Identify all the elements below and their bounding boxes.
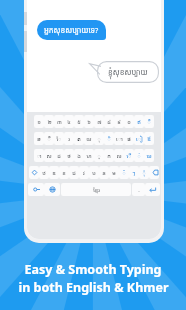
- button[interactable]: ៉: [119, 166, 129, 179]
- button[interactable]: ង: [74, 149, 84, 162]
- button[interactable]: ឹ: [144, 115, 154, 128]
- button[interactable]: ០: [124, 115, 134, 128]
- button[interactable]: ហ: [84, 149, 94, 162]
- staticText: ០: [127, 118, 131, 126]
- button[interactable]: ៦: [84, 115, 94, 128]
- button[interactable]: ថ: [64, 149, 74, 162]
- staticText: ឥ: [137, 118, 141, 126]
- staticText: ន: [102, 169, 106, 177]
- button[interactable]: ខ: [59, 166, 69, 179]
- button[interactable]: ោ: [114, 132, 124, 145]
- staticText: in both English & Khmer: [18, 279, 169, 296]
- button[interactable]: ម: [109, 166, 119, 179]
- staticText: Easy & Smooth Typing: [24, 261, 162, 278]
- button[interactable]: Space: [61, 183, 131, 196]
- staticText: ៤: [67, 118, 71, 126]
- button[interactable]: ៣: [54, 115, 64, 128]
- button[interactable]: ឃ: [144, 149, 154, 162]
- button[interactable]: ល: [114, 149, 124, 162]
- staticText: ខ្មែរ: [93, 186, 100, 193]
- staticText: ោ: [116, 135, 123, 143]
- button[interactable]: ខ្ញុំសុខសប្បាយ: [97, 61, 159, 83]
- staticText: ្: [97, 152, 101, 160]
- button[interactable]: ន: [99, 166, 109, 179]
- staticText: ឃ: [146, 152, 152, 160]
- button[interactable]: ិ: [104, 132, 114, 145]
- staticText: ផ: [127, 135, 131, 143]
- staticText: ដ: [57, 152, 61, 160]
- staticText: ៩: [117, 118, 121, 126]
- staticText: ឹ: [147, 118, 151, 126]
- staticText: ១: [37, 118, 41, 126]
- button[interactable]: Enter: [145, 183, 160, 196]
- staticText: ត: [77, 135, 81, 143]
- button[interactable]: ្: [94, 149, 104, 162]
- staticText: ៦: [87, 118, 91, 126]
- staticText: ជ: [72, 169, 76, 177]
- staticText: រ: [68, 135, 70, 143]
- button[interactable]: ា: [34, 149, 44, 162]
- button[interactable]: ុំ: [139, 166, 149, 179]
- staticText: អ្នកសុខសប្បាយទេ?: [44, 25, 99, 35]
- button[interactable]: ៩: [114, 115, 124, 128]
- button[interactable]: ផ: [124, 132, 134, 145]
- button[interactable]: ៀ: [134, 132, 144, 145]
- button[interactable]: ឪ: [144, 132, 154, 145]
- button[interactable]: ឋ: [39, 166, 49, 179]
- button[interactable]: ៤: [64, 115, 74, 128]
- staticText: ើ: [126, 152, 132, 160]
- staticText: ខ: [62, 169, 66, 177]
- staticText: ៧: [97, 118, 102, 126]
- button[interactable]: ុ: [94, 132, 104, 145]
- staticText: ហ: [86, 152, 92, 160]
- staticText: ២: [47, 118, 52, 126]
- staticText: ង: [77, 152, 81, 160]
- staticText: .: [138, 186, 140, 194]
- staticText: ៨: [107, 118, 111, 126]
- button[interactable]: ៗ: [129, 166, 139, 179]
- staticText: យ: [86, 135, 92, 143]
- staticText: ឺ: [47, 135, 51, 143]
- button[interactable]: ់: [134, 149, 144, 162]
- button[interactable]: ែ: [54, 132, 64, 145]
- staticText: ៀ: [136, 135, 143, 143]
- button[interactable]: Backspace: [149, 166, 159, 179]
- staticText: ែ: [56, 135, 62, 143]
- button[interactable]: ជ: [69, 166, 79, 179]
- staticText: ៉: [122, 169, 126, 177]
- button[interactable]: ឆ: [34, 132, 44, 145]
- button[interactable]: ឌ: [49, 166, 59, 179]
- staticText: ឆ: [37, 135, 41, 143]
- button[interactable]: ឺ: [44, 132, 54, 145]
- button[interactable]: Change language: [44, 183, 60, 196]
- button[interactable]: យ: [84, 132, 94, 145]
- button[interactable]: ត: [74, 132, 84, 145]
- button[interactable]: វ: [79, 166, 89, 179]
- button[interactable]: ដ: [54, 149, 64, 162]
- staticText: ថ: [67, 152, 71, 160]
- button[interactable]: ឥ: [134, 115, 144, 128]
- button[interactable]: ៨: [104, 115, 114, 128]
- staticText: ស: [46, 152, 52, 160]
- button[interactable]: ៧: [94, 115, 104, 128]
- button[interactable]: ប: [89, 166, 99, 179]
- button[interactable]: ើ: [124, 149, 134, 162]
- staticText: ក: [107, 152, 111, 160]
- button[interactable]: អ្នកសុខសប្បាយទេ?: [37, 20, 106, 40]
- staticText: ៣: [57, 118, 62, 126]
- button[interactable]: Symbols: [28, 183, 44, 196]
- staticText: ា: [36, 152, 42, 160]
- button[interactable]: .: [132, 183, 145, 196]
- button[interactable]: Shift: [29, 166, 39, 179]
- button[interactable]: ៥: [74, 115, 84, 128]
- staticText: ម: [112, 169, 116, 177]
- staticText: ឋ: [42, 169, 46, 177]
- button[interactable]: រ: [64, 132, 74, 145]
- button[interactable]: ១: [34, 115, 44, 128]
- staticText: ិ: [107, 135, 111, 143]
- button[interactable]: ស: [44, 149, 54, 162]
- staticText: ប: [92, 169, 96, 177]
- staticText: ៗ: [132, 169, 136, 177]
- button[interactable]: ២: [44, 115, 54, 128]
- button[interactable]: ក: [104, 149, 114, 162]
